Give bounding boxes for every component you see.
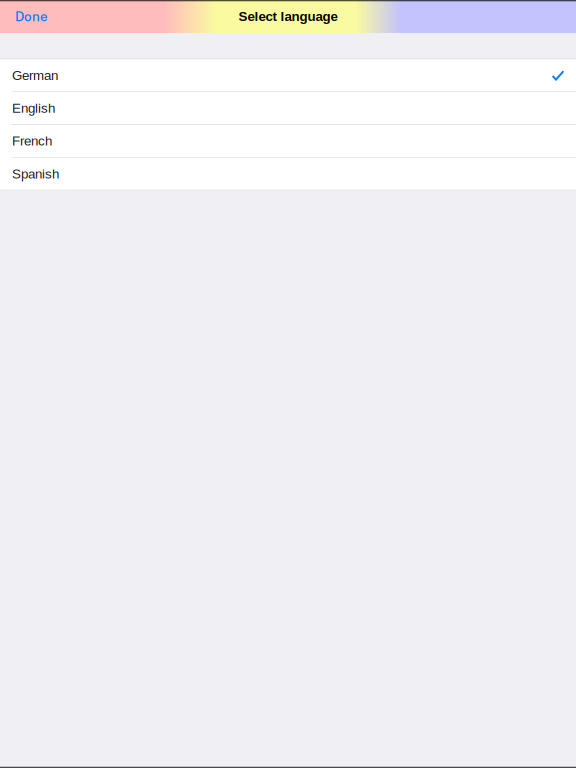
staticText: French <box>12 134 52 148</box>
button[interactable]: English <box>0 92 576 125</box>
staticText: English <box>12 101 55 116</box>
button[interactable]: French <box>0 125 576 158</box>
staticText: Done <box>15 9 48 24</box>
button[interactable]: Done <box>7 2 56 31</box>
button[interactable]: German <box>0 59 576 92</box>
button[interactable]: Spanish <box>0 158 576 191</box>
staticText: German <box>12 68 58 83</box>
staticText: Spanish <box>12 166 59 181</box>
staticText: Select language <box>238 9 337 24</box>
